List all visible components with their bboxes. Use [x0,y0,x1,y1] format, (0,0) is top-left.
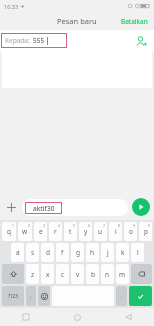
button[interactable]: v [71,264,84,284]
button[interactable]: u [94,222,107,241]
button[interactable]: y [79,222,92,241]
staticText: 6 [88,223,91,228]
button[interactable]: w [18,222,32,241]
staticText: u [98,227,103,236]
staticText: t [69,227,72,236]
button[interactable]: g [71,243,84,262]
staticText: 8 [118,223,121,228]
staticText: Pesan baru [57,16,97,26]
staticText: h [90,248,95,257]
staticText: m [119,270,126,279]
staticText: b [91,270,95,279]
button[interactable]: r [49,222,62,241]
button[interactable]: ?123 [2,286,24,306]
button[interactable]: x [41,264,54,284]
button[interactable]: m [116,264,129,284]
button[interactable]: Selesai [129,286,152,306]
staticText: o [129,227,133,236]
button[interactable]: l [131,243,144,262]
staticText: Kepada: [5,36,30,45]
button[interactable]: s [26,243,39,262]
staticText: k [121,248,125,257]
button[interactable]: . [116,286,127,306]
staticText: 1 [12,223,15,228]
staticText: g [76,248,80,257]
button[interactable]: Hapus [131,264,152,284]
staticText: l [137,248,139,257]
staticText: e [39,227,43,236]
staticText: j [107,248,109,257]
staticText: f [61,248,64,257]
staticText: c [61,270,65,279]
button[interactable]: Batalkan [115,14,154,29]
staticText: i [115,227,117,236]
staticText: n [105,270,110,279]
button[interactable]: Shift [2,264,24,284]
staticText: a [16,248,20,257]
staticText: 2 [28,223,31,228]
staticText: y [84,227,88,236]
button[interactable]: a [11,243,24,262]
staticText: d [46,248,50,257]
button[interactable]: t [64,222,77,241]
button[interactable]: aktif30 [22,199,128,216]
staticText: 9 [133,223,136,228]
staticText: p [144,227,148,236]
staticText: 3 [43,223,46,228]
button[interactable]: Tambah kontak [133,33,149,49]
button[interactable]: o [124,222,137,241]
staticText: Batalkan [121,17,148,26]
staticText: 7 [103,223,106,228]
button[interactable]: h [86,243,99,262]
button[interactable]: z [26,264,39,284]
button[interactable]: e [34,222,47,241]
staticText: r [54,227,57,236]
button[interactable]: Kirim [132,198,150,216]
button[interactable]: Lampirkan [4,200,19,215]
button[interactable]: f [56,243,69,262]
staticText: z [31,270,35,279]
button[interactable]: Home [52,308,103,326]
button[interactable]: c [56,264,69,284]
staticText: v [76,270,80,279]
button[interactable]: i [109,222,122,241]
staticText: w [22,227,28,236]
button[interactable]: p [139,222,152,241]
staticText: q [7,227,11,236]
staticText: . [121,292,123,300]
staticText: 555 [33,36,45,45]
button[interactable]: d [41,243,54,262]
button[interactable]: b [86,264,99,284]
staticText: 5 [73,223,76,228]
button[interactable]: Recents [0,308,52,326]
staticText: 10.33 [4,3,19,10]
staticText: 0 [148,223,151,228]
button[interactable]: Kepada: [1,33,67,48]
button[interactable]: Emoji [38,286,50,306]
staticText: , [30,292,32,300]
staticText: aktif30 [33,204,55,213]
staticText: s [31,248,35,257]
button[interactable]: , [26,286,36,306]
button[interactable]: q [2,222,16,241]
button[interactable]: Back [103,308,154,326]
button[interactable]: n [101,264,114,284]
staticText: x [46,270,50,279]
staticText: ?123 [8,293,18,299]
button[interactable]: k [116,243,129,262]
staticText: 4 [58,223,61,228]
button[interactable]: j [101,243,114,262]
